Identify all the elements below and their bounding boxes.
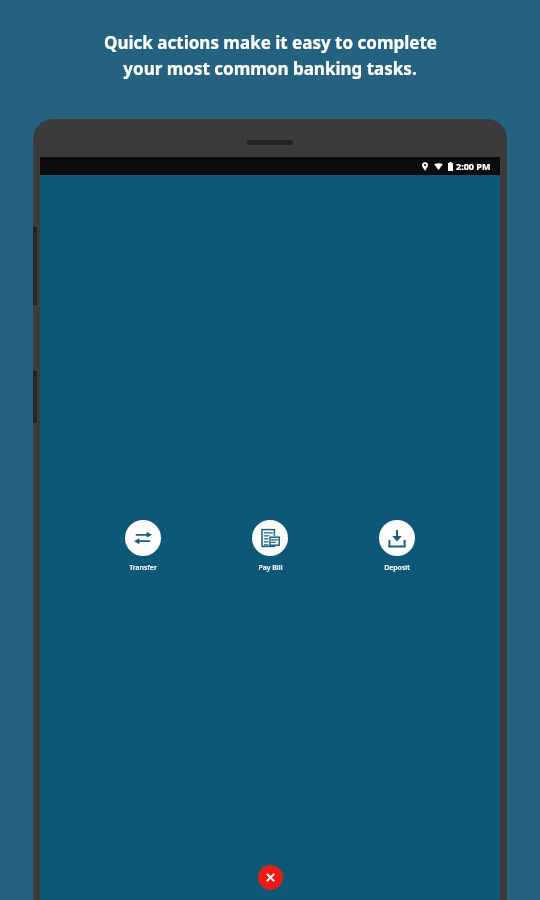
button[interactable]: Deposit (373, 518, 421, 575)
staticText: 2:00 PM (456, 160, 491, 172)
button[interactable]: Pay Bill (246, 518, 294, 575)
staticText: your most common banking tasks. (123, 57, 417, 80)
staticText: Quick actions make it easy to complete (104, 31, 437, 54)
staticText: Deposit (384, 563, 410, 573)
staticText: Pay Bill (258, 563, 283, 573)
button[interactable]: Close quick actions (258, 865, 283, 890)
staticText: Transfer (129, 563, 157, 573)
button[interactable]: Transfer (119, 518, 167, 575)
